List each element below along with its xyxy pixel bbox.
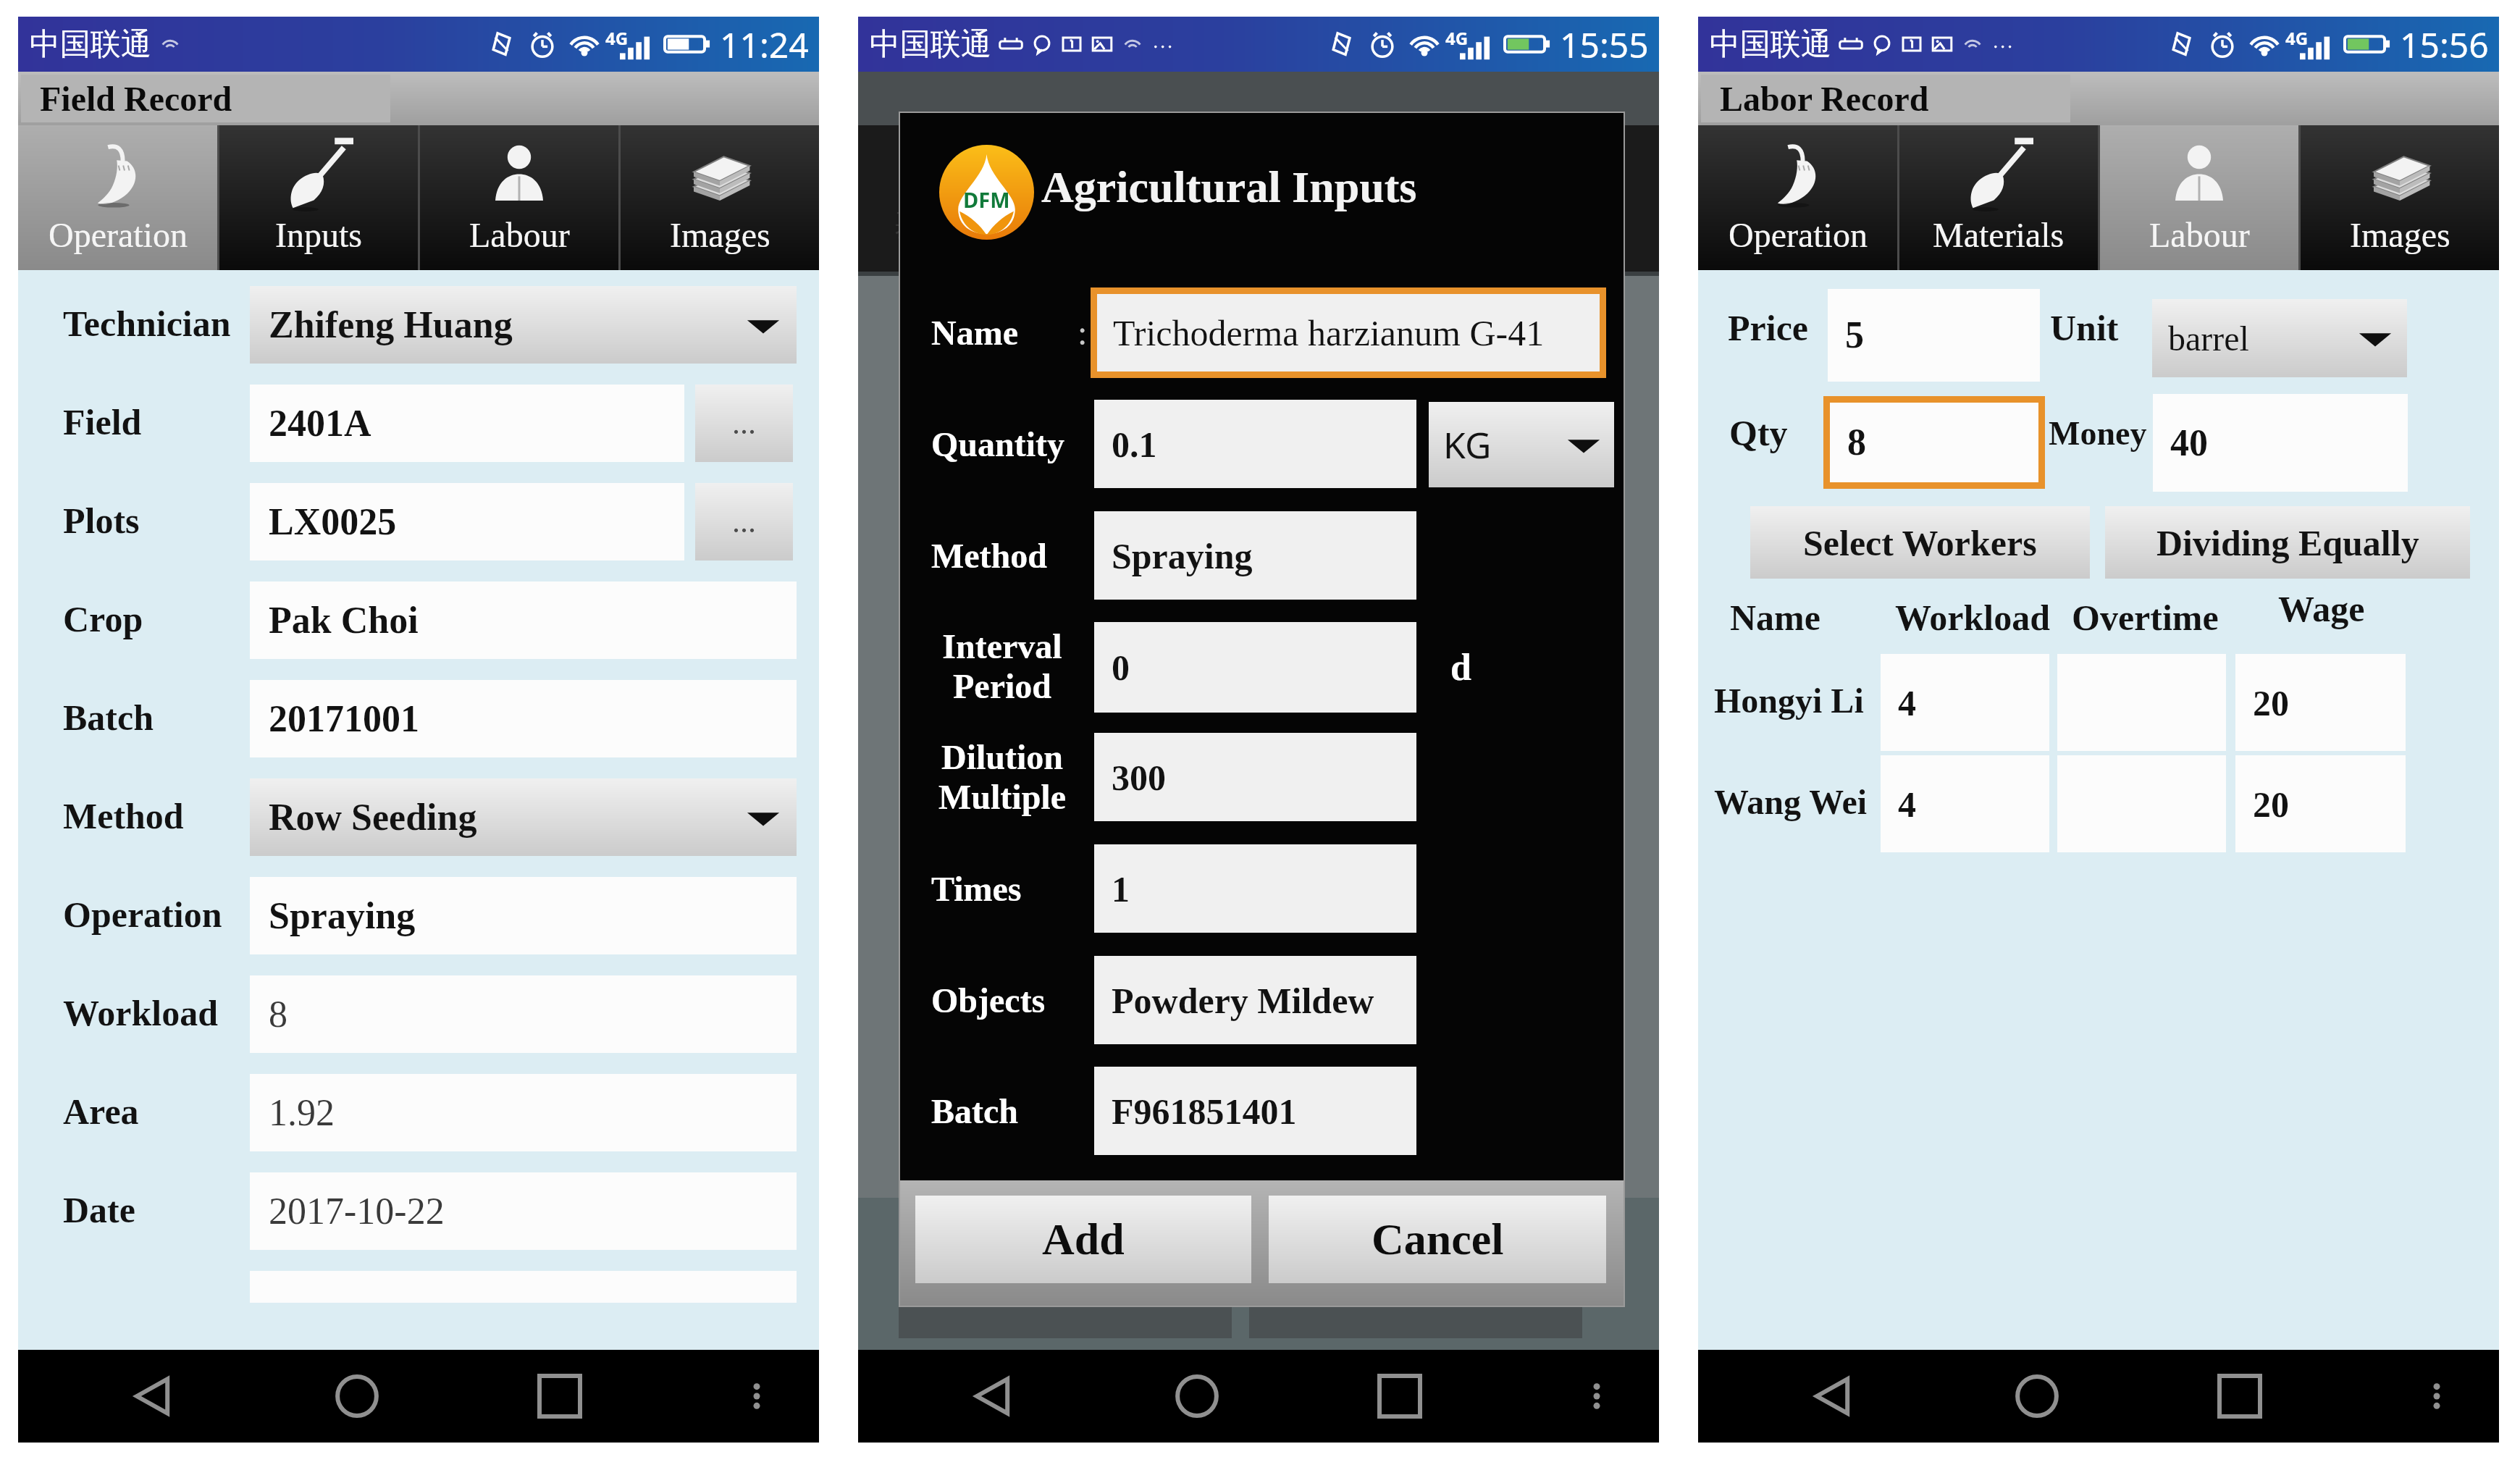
button[interactable]: Operation bbox=[18, 125, 217, 270]
staticText: Row Seeding bbox=[269, 797, 477, 839]
staticText: Unit bbox=[2050, 308, 2119, 348]
button[interactable]: Images bbox=[2301, 125, 2499, 270]
button[interactable]: 5 bbox=[1828, 289, 2040, 382]
staticText: d bbox=[1450, 647, 1471, 689]
staticText: 4G bbox=[2285, 26, 2309, 50]
staticText: Select Workers bbox=[1803, 523, 2037, 563]
button[interactable]: 2401A bbox=[250, 385, 684, 462]
button[interactable]: Home bbox=[1994, 1353, 2080, 1439]
button[interactable]: 4 bbox=[1881, 654, 2049, 751]
button[interactable]: Materials bbox=[1899, 125, 2098, 270]
staticText: Name bbox=[931, 314, 1018, 352]
button[interactable]: More options bbox=[2401, 1360, 2473, 1432]
staticText: F961851401 bbox=[1112, 1091, 1297, 1131]
button[interactable]: ... bbox=[695, 385, 793, 462]
staticText: Money bbox=[2049, 415, 2147, 452]
staticText: 基本信息 bbox=[894, 205, 1022, 245]
button[interactable]: KG bbox=[1429, 402, 1614, 487]
button[interactable]: Recent apps bbox=[1357, 1353, 1442, 1439]
staticText: Overtime bbox=[2072, 597, 2219, 637]
staticText: 1.92 bbox=[269, 1092, 335, 1134]
button[interactable]: LX0025 bbox=[250, 483, 684, 560]
staticText: Times bbox=[931, 870, 1022, 908]
staticText: Inputs bbox=[275, 216, 362, 254]
button[interactable] bbox=[2057, 755, 2226, 852]
staticText: 2401A bbox=[269, 403, 371, 445]
button[interactable]: Pak Choi bbox=[250, 581, 797, 659]
staticText: Operation bbox=[49, 216, 188, 254]
button[interactable]: 1.92 bbox=[250, 1074, 797, 1151]
staticText: Field Record bbox=[40, 80, 232, 118]
button[interactable]: More options bbox=[1561, 1360, 1633, 1432]
button[interactable]: 8 bbox=[250, 975, 797, 1053]
button[interactable]: Back bbox=[111, 1353, 196, 1439]
staticText: Method bbox=[931, 537, 1047, 575]
button[interactable]: 300 bbox=[1094, 733, 1416, 821]
button[interactable]: 2017-10-22 bbox=[250, 1172, 797, 1250]
button[interactable]: Labour bbox=[2100, 125, 2298, 270]
button[interactable]: 4 bbox=[1881, 755, 2049, 852]
staticText: Labour bbox=[2149, 216, 2250, 254]
button[interactable]: Spraying bbox=[1094, 511, 1416, 600]
staticText: Powdery Mildew bbox=[1112, 981, 1374, 1020]
button[interactable]: Recent apps bbox=[517, 1353, 602, 1439]
staticText: 300 bbox=[1112, 757, 1166, 797]
button[interactable]: 1 bbox=[1094, 844, 1416, 933]
button[interactable]: 0 bbox=[1094, 622, 1416, 713]
staticText: 2017-10-22 bbox=[269, 1191, 445, 1233]
button[interactable]: Dividing Equally bbox=[2105, 506, 2470, 579]
button[interactable]: Labour bbox=[420, 125, 618, 270]
button[interactable]: 20 bbox=[2235, 654, 2406, 751]
button[interactable]: 0.1 bbox=[1094, 400, 1416, 488]
button[interactable]: Inputs bbox=[219, 125, 418, 270]
button[interactable]: Images bbox=[621, 125, 819, 270]
button[interactable]: Home bbox=[1154, 1353, 1240, 1439]
staticText: Spraying bbox=[269, 895, 416, 937]
staticText: 1 bbox=[1112, 869, 1130, 909]
staticText: Workload bbox=[63, 993, 218, 1033]
staticText: Workload bbox=[1895, 597, 2050, 637]
button[interactable]: Spraying bbox=[250, 877, 797, 954]
staticText: 0 bbox=[1112, 647, 1130, 687]
staticText: Zhifeng Huang bbox=[269, 304, 513, 346]
button[interactable]: Select Workers bbox=[1750, 506, 2090, 579]
staticText: LX0025 bbox=[269, 501, 397, 543]
staticText: Labour bbox=[469, 216, 570, 254]
staticText: 0.1 bbox=[1112, 424, 1157, 464]
staticText: Images bbox=[2350, 216, 2450, 254]
button[interactable]: Cancel bbox=[1269, 1196, 1606, 1283]
button[interactable]: Add bbox=[915, 1196, 1251, 1283]
staticText: 8 bbox=[269, 994, 287, 1036]
button[interactable]: More options bbox=[721, 1360, 793, 1432]
button[interactable]: Recent apps bbox=[2197, 1353, 2282, 1439]
staticText: Qty bbox=[1729, 413, 1788, 453]
button[interactable]: Zhifeng Huang bbox=[250, 286, 797, 364]
button[interactable]: barrel bbox=[2152, 299, 2407, 377]
staticText: Plots bbox=[63, 500, 140, 540]
button[interactable]: F961851401 bbox=[1094, 1067, 1416, 1155]
staticText: Crop bbox=[63, 599, 143, 639]
button[interactable]: 20171001 bbox=[250, 680, 797, 757]
button[interactable]: Operation bbox=[1698, 125, 1897, 270]
button[interactable]: ... bbox=[695, 483, 793, 560]
button[interactable]: 20 bbox=[2235, 755, 2406, 852]
button[interactable]: Home bbox=[314, 1353, 400, 1439]
staticText: Area bbox=[63, 1091, 139, 1131]
button[interactable]: Row Seeding bbox=[250, 778, 797, 856]
button[interactable]: Back bbox=[951, 1353, 1036, 1439]
staticText: Operation bbox=[63, 894, 222, 934]
staticText: Dilution Multiple bbox=[938, 738, 1066, 817]
button[interactable]: 8 bbox=[1823, 396, 2045, 489]
button[interactable]: Powdery Mildew bbox=[1094, 956, 1416, 1044]
staticText: 15:56 bbox=[2400, 21, 2489, 68]
staticText: Batch bbox=[63, 697, 154, 737]
button[interactable]: Trichoderma harzianum G-41 bbox=[1091, 287, 1606, 378]
staticText: 15:55 bbox=[1560, 21, 1649, 68]
staticText: 中国联通 bbox=[1710, 25, 1831, 64]
staticText: Cancel bbox=[1372, 1214, 1504, 1264]
staticText: Trichoderma harzianum G-41 bbox=[1113, 313, 1545, 353]
button[interactable]: Back bbox=[1791, 1353, 1876, 1439]
button[interactable]: 40 bbox=[2153, 394, 2408, 492]
